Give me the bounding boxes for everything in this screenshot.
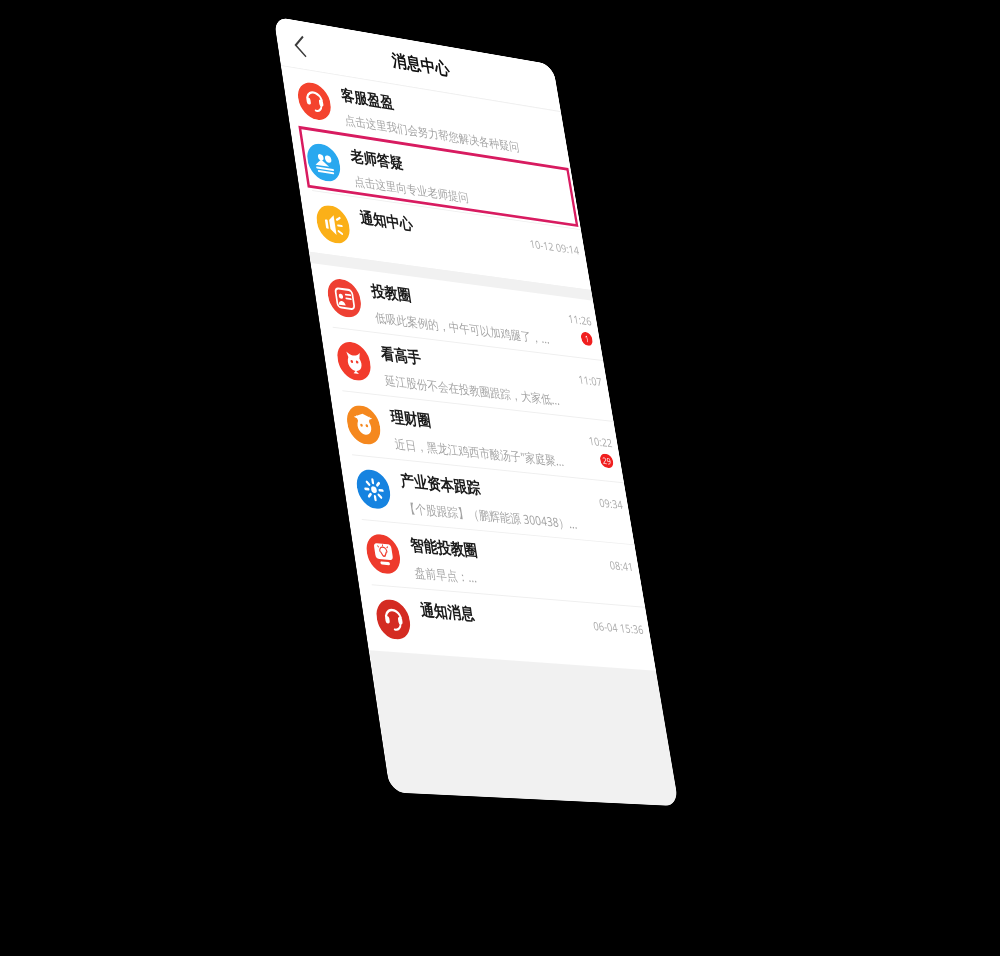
staticText: 点击这里向专业老师提问 [353, 173, 470, 206]
staticText: 智能投教圈 [409, 535, 479, 561]
staticText: 消息中心 [390, 50, 451, 80]
staticText: 点击这里我们会努力帮您解决各种疑问 [343, 112, 521, 155]
button[interactable]: 智能投教圈 [349, 519, 645, 608]
staticText: 看高手 [379, 344, 422, 368]
staticText: 11:26 [567, 311, 593, 328]
staticText: 1 [584, 333, 590, 345]
button[interactable]: Back [278, 21, 321, 70]
button[interactable]: 老师答疑 [291, 127, 581, 230]
staticText: 【个股跟踪】（鹏辉能源 300438）... [403, 499, 579, 533]
staticText: 08:41 [608, 557, 634, 574]
staticText: 近日，黑龙江鸡西市酸汤子"家庭聚... [393, 435, 565, 470]
staticText: 11:07 [577, 371, 603, 389]
staticText: 10-12 09:14 [528, 236, 581, 257]
staticText: 产业资本跟踪 [399, 471, 481, 499]
staticText: 盘前早点：... [413, 563, 478, 586]
staticText: 投教圈 [370, 281, 413, 306]
button[interactable]: 理财圈 [330, 390, 624, 483]
staticText: 09:34 [598, 494, 624, 512]
button[interactable]: 客服盈盈 [281, 66, 571, 171]
staticText: 10:22 [587, 433, 613, 450]
staticText: 理财圈 [389, 407, 432, 431]
button[interactable]: 产业资本跟踪 [340, 454, 634, 545]
button[interactable]: 投教圈 [311, 263, 603, 361]
staticText: 通知中心 [358, 208, 414, 235]
button[interactable]: 通知消息 [359, 584, 656, 671]
staticText: 延江股份不会在投教圈跟踪，大家低... [383, 371, 561, 409]
staticText: 29 [601, 454, 612, 467]
button[interactable]: 看高手 [320, 326, 614, 422]
staticText: 老师答疑 [349, 146, 404, 174]
staticText: 06-04 15:36 [592, 618, 645, 637]
staticText: 客服盈盈 [339, 85, 395, 113]
staticText: 通知消息 [419, 600, 476, 625]
staticText: 低吸此案例的，中午可以加鸡腿了，... [374, 308, 551, 347]
button[interactable]: 通知中心 [300, 189, 591, 290]
